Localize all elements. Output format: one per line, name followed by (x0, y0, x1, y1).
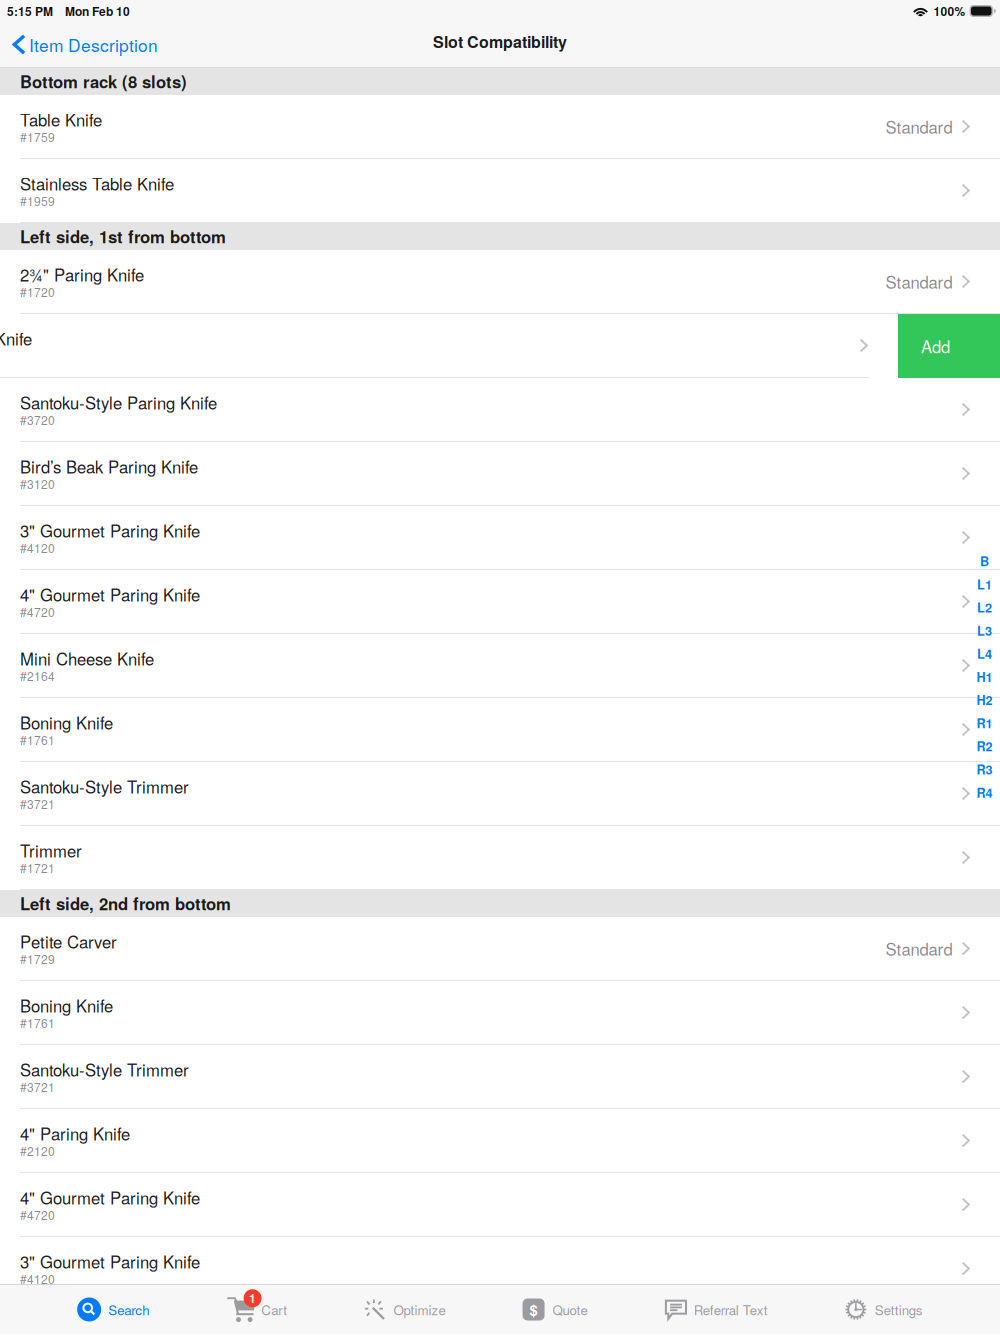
staticText: 1 (249, 1290, 256, 1307)
staticText: #1761 (20, 1014, 55, 1031)
button[interactable]: Mini Cheese Knife (0, 634, 1000, 698)
button[interactable]: Boning Knife (0, 981, 1000, 1045)
button[interactable]: Table Knife (0, 95, 1000, 159)
staticText: 4" Paring Knife (20, 1121, 130, 1145)
staticText: 3" Gourmet Paring Knife (20, 518, 200, 542)
button[interactable]: 4" Gourmet Paring Knife (0, 570, 1000, 634)
button[interactable]: Bird’s Beak Paring Knife (0, 442, 1000, 506)
staticText: Standard (885, 937, 952, 960)
staticText: #1761 (20, 731, 55, 748)
button[interactable]: Settings (845, 1285, 923, 1334)
staticText: Table Knife (20, 107, 102, 131)
staticText: R4 (976, 783, 992, 801)
staticText: 5:15 PM (7, 2, 53, 20)
staticText: Optimize (393, 1300, 445, 1319)
button[interactable]: Add (898, 314, 1000, 378)
staticText: H2 (976, 691, 992, 709)
staticText: Santoku-Style Paring Knife (20, 390, 217, 414)
button[interactable]: 1 (226, 1285, 287, 1334)
staticText: Standard (885, 270, 952, 293)
staticText: 2¾" Paring Knife (20, 262, 144, 286)
staticText: Mini Cheese Knife (20, 646, 154, 670)
button[interactable]: Search (77, 1285, 149, 1334)
staticText: L4 (977, 645, 992, 663)
button[interactable]: Item Description (0, 22, 168, 67)
staticText: Santoku-Style Trimmer (20, 1057, 189, 1081)
staticText: Referral Text (694, 1300, 768, 1319)
button[interactable]: Santoku-Style Trimmer (0, 762, 1000, 826)
staticText: Bottom rack (8 slots) (20, 70, 187, 93)
staticText: Search (108, 1300, 149, 1319)
staticText: Cart (261, 1300, 287, 1319)
staticText: 100% (933, 2, 965, 20)
button[interactable]: Stainless Table Knife (0, 159, 1000, 223)
staticText: 4" Gourmet Paring Knife (20, 582, 200, 606)
staticText: L3 (977, 621, 992, 639)
button[interactable]: Referral Text (665, 1285, 768, 1334)
staticText: 4" Gourmet Paring Knife (20, 1185, 200, 1209)
button[interactable]: Boning Knife (0, 698, 1000, 762)
button[interactable]: Optimize (364, 1285, 445, 1334)
staticText: Knife (0, 326, 32, 350)
staticText: Santoku-Style Trimmer (20, 774, 189, 798)
button[interactable]: $ (523, 1285, 588, 1334)
staticText: Petite Carver (20, 929, 117, 953)
button[interactable]: 3" Gourmet Paring Knife (0, 1237, 1000, 1301)
staticText: #1959 (20, 192, 55, 209)
button[interactable]: 2¾" Paring Knife (0, 250, 1000, 314)
staticText: #3721 (20, 1078, 55, 1095)
staticText: 3" Gourmet Paring Knife (20, 1249, 200, 1273)
staticText: #4720 (20, 603, 55, 620)
staticText: #1721 (20, 859, 55, 876)
button[interactable]: 4" Paring Knife (0, 1109, 1000, 1173)
staticText: Boning Knife (20, 993, 113, 1017)
staticText: #3720 (20, 411, 55, 428)
staticText: Left side, 1st from bottom (20, 225, 226, 248)
staticText: Boning Knife (20, 710, 113, 734)
button[interactable]: Petite Carver (0, 917, 1000, 981)
staticText: Left side, 2nd from bottom (20, 892, 231, 915)
staticText: R2 (976, 737, 992, 755)
staticText: Mon Feb 10 (65, 2, 130, 20)
staticText: #4120 (20, 539, 55, 556)
staticText: Add (921, 334, 950, 358)
staticText: #2164 (20, 667, 55, 684)
staticText: #1720 (20, 283, 55, 300)
staticText: Slot Compatibility (433, 30, 567, 53)
staticText: $ (530, 1299, 538, 1320)
staticText: H1 (976, 668, 992, 686)
staticText: Stainless Table Knife (20, 171, 174, 195)
staticText: Standard (885, 115, 952, 138)
staticText: #3120 (20, 475, 55, 492)
button[interactable]: 4" Gourmet Paring Knife (0, 1173, 1000, 1237)
staticText: #2120 (20, 1142, 55, 1159)
staticText: #1729 (20, 950, 55, 967)
staticText: Settings (875, 1300, 923, 1319)
staticText: B (980, 552, 989, 570)
staticText: Quote (553, 1300, 588, 1319)
staticText: R3 (976, 760, 992, 778)
button[interactable]: Santoku-Style Paring Knife (0, 378, 1000, 442)
staticText: Trimmer (20, 838, 82, 862)
button[interactable]: 3" Gourmet Paring Knife (0, 506, 1000, 570)
staticText: R1 (976, 714, 992, 732)
staticText: #3721 (20, 795, 55, 812)
staticText: L2 (977, 598, 992, 616)
button[interactable]: Knife (0, 314, 898, 378)
staticText: Bird’s Beak Paring Knife (20, 454, 198, 478)
button[interactable]: Trimmer (0, 826, 1000, 890)
staticText: #4120 (20, 1270, 55, 1287)
staticText: Item Description (29, 32, 158, 57)
staticText: #4720 (20, 1206, 55, 1223)
button[interactable]: Santoku-Style Trimmer (0, 1045, 1000, 1109)
staticText: L1 (977, 575, 992, 593)
staticText: #1759 (20, 128, 55, 145)
